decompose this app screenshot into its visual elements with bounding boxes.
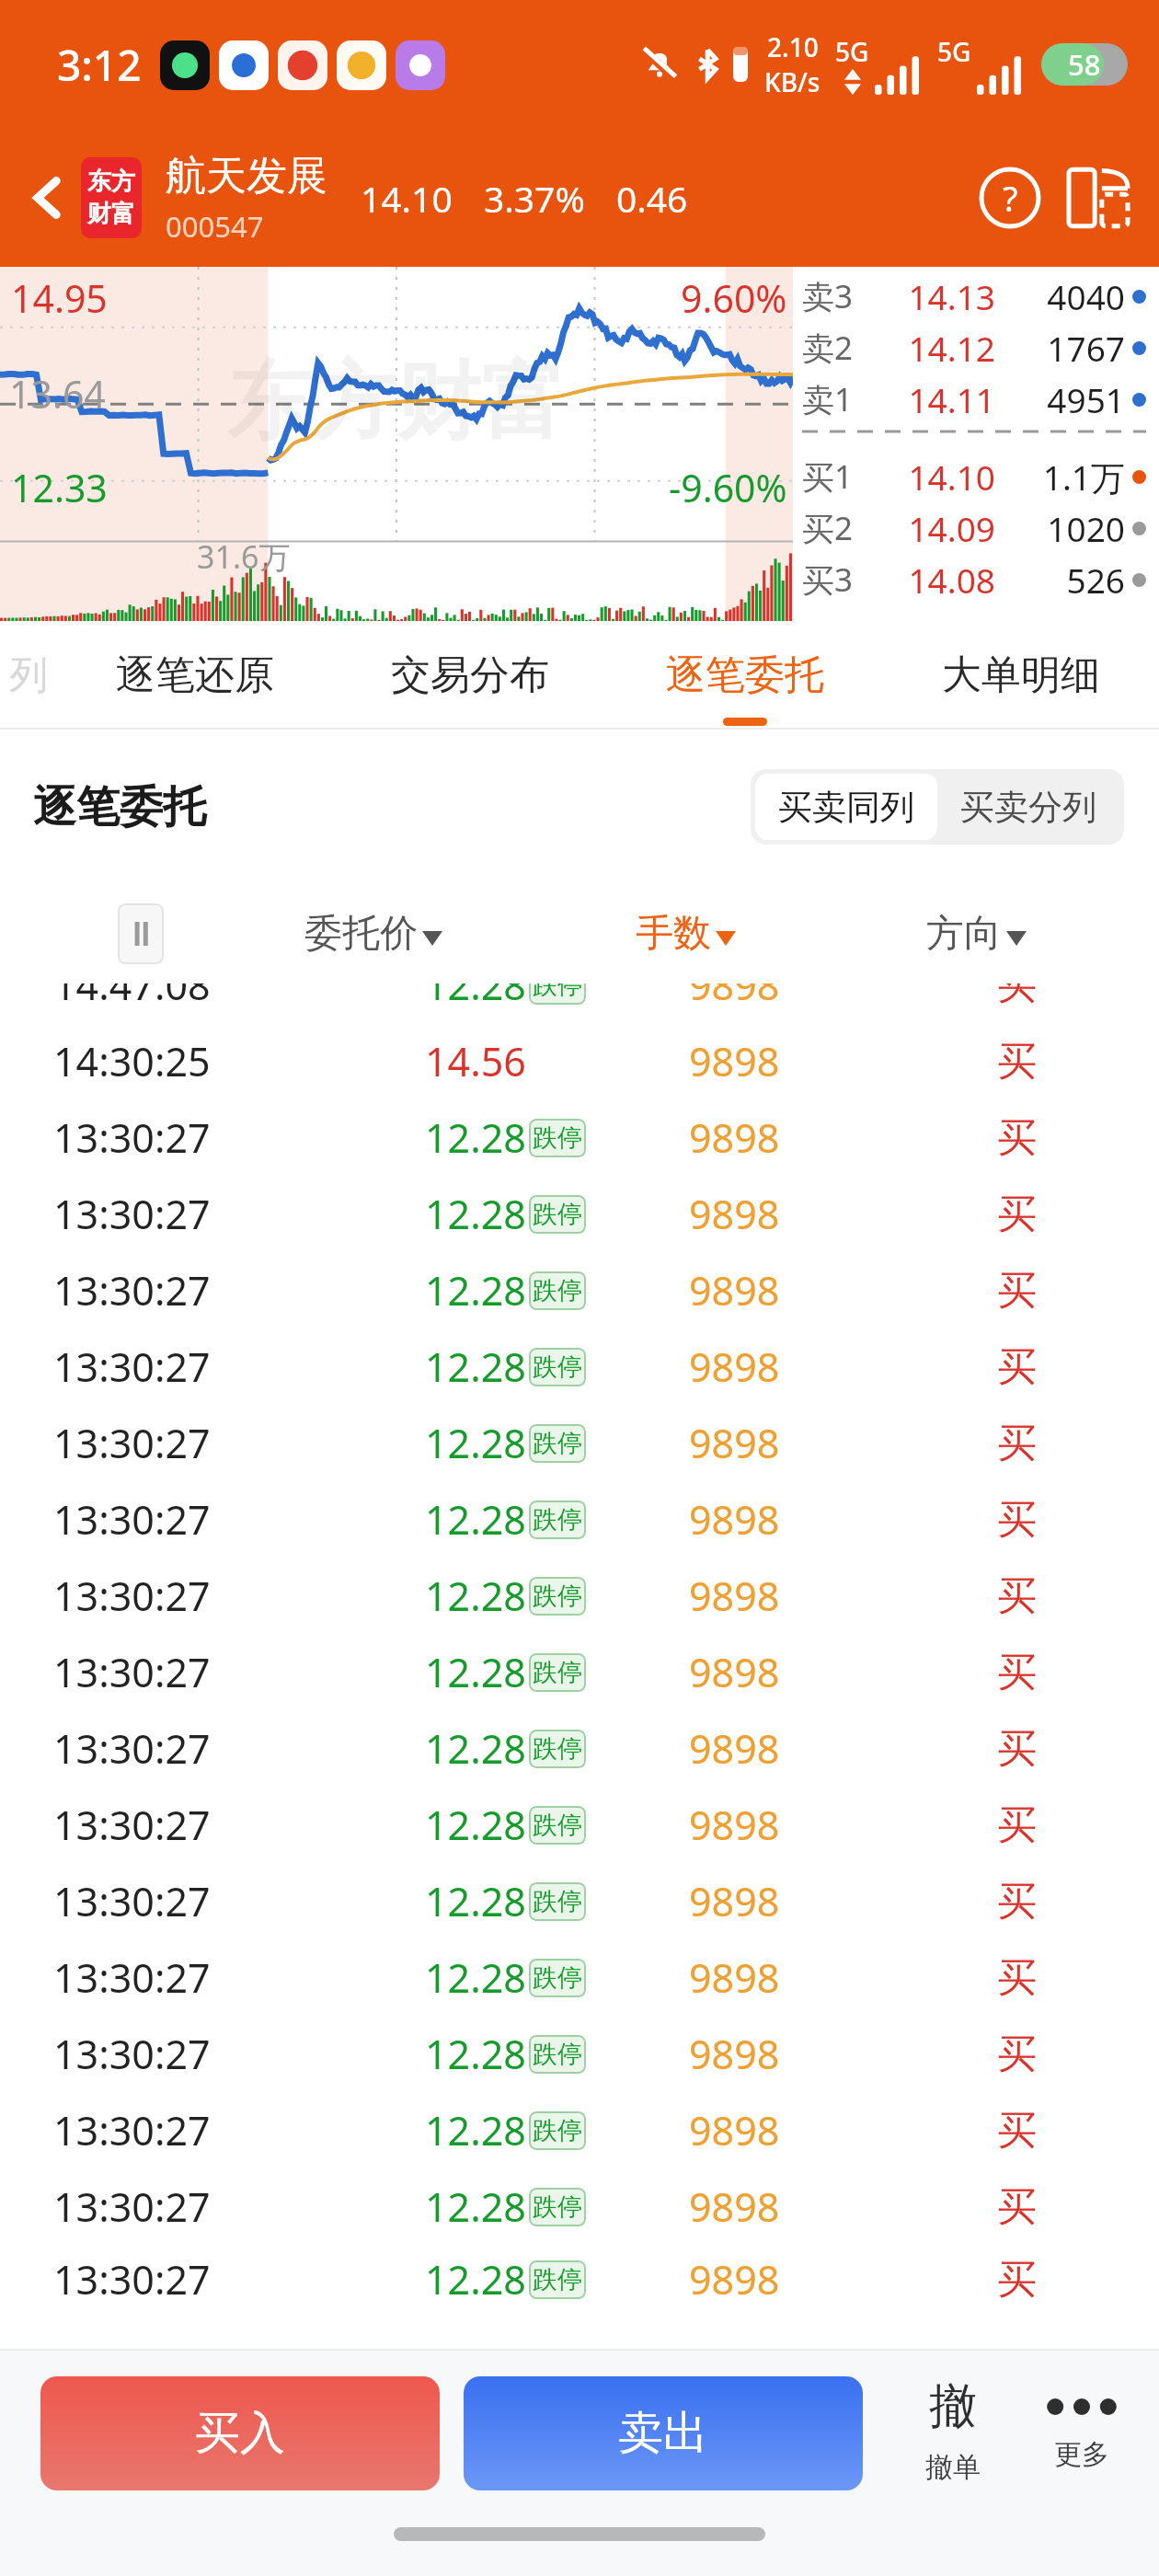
staticText: 9898 (689, 1645, 780, 1699)
button[interactable]: 13:30:27 (0, 2016, 1159, 2092)
staticText: 财富 (87, 199, 135, 229)
staticText: 撤单 (925, 2450, 981, 2485)
staticText: 1.1万 (1042, 454, 1125, 500)
button[interactable]: 撤 (901, 2376, 1004, 2485)
button[interactable]: 买1 (802, 451, 1146, 502)
staticText: 大单明细 (942, 650, 1100, 700)
button[interactable]: 13:30:27 (0, 1099, 1159, 1176)
button[interactable]: 13:30:27 (0, 1481, 1159, 1558)
staticText: 526 (1066, 557, 1125, 603)
staticText: 12.28 (425, 2179, 526, 2234)
button[interactable]: 买卖同列 (755, 774, 937, 840)
staticText: 委托价 (304, 910, 418, 958)
staticText: 12.28 (425, 1645, 526, 1699)
staticText: 买 (997, 1113, 1037, 1163)
staticText: 14.95 (11, 272, 108, 324)
button[interactable]: 逐笔还原 (57, 621, 332, 730)
staticText: 58 (1068, 45, 1101, 84)
staticText: 9898 (689, 1416, 780, 1470)
button[interactable]: Back (18, 168, 77, 227)
staticText: 卖3 (802, 274, 879, 318)
staticText: 14.12 (879, 325, 995, 371)
button[interactable]: 13:30:27 (0, 2168, 1159, 2245)
staticText: 5G (937, 34, 971, 69)
staticText: 12.28 (425, 1874, 526, 1928)
staticText: 卖2 (802, 326, 879, 370)
staticText: 12.28 (425, 1416, 526, 1470)
staticText: 13:30:27 (53, 1950, 211, 2005)
staticText: 13:30:27 (53, 1798, 211, 1852)
staticText: 跌停 (533, 1810, 582, 1841)
button[interactable]: 交易分布 (332, 621, 607, 730)
button[interactable]: Help (973, 161, 1047, 235)
button[interactable]: 14:30:25 (0, 1023, 1159, 1099)
button[interactable]: 14:47:08 (0, 983, 1159, 1023)
staticText: 买 (997, 1953, 1037, 2003)
staticText: 14.08 (879, 557, 995, 603)
button[interactable]: 买3 (802, 554, 1146, 605)
staticText: 12.28 (425, 983, 526, 1012)
button[interactable]: 手数 (0, 910, 736, 958)
staticText: 东方 (87, 167, 135, 197)
staticText: 东方财富 (227, 349, 566, 455)
staticText: 9898 (689, 1110, 780, 1165)
staticText: 13:30:27 (53, 1340, 211, 1394)
button[interactable]: 卖出 (464, 2376, 863, 2490)
button[interactable]: 13:30:27 (0, 1558, 1159, 1634)
staticText: 0.46 (616, 174, 688, 223)
button[interactable]: 13:30:27 (0, 2245, 1159, 2314)
staticText: 跌停 (533, 1962, 582, 1994)
button[interactable]: 13:30:27 (0, 2092, 1159, 2168)
staticText: 买 (997, 1648, 1037, 1697)
staticText: 买1 (802, 454, 879, 499)
staticText: 9898 (689, 1187, 780, 1241)
staticText: 买 (997, 2030, 1037, 2079)
button[interactable]: 委托价 (0, 910, 442, 958)
button[interactable]: 13:30:27 (0, 1176, 1159, 1252)
staticText: 4040 (1047, 273, 1125, 319)
button[interactable]: 买卖分列 (937, 774, 1119, 840)
staticText: 13:30:27 (53, 1263, 211, 1317)
button[interactable]: 买2 (802, 502, 1146, 554)
button[interactable]: 13:30:27 (0, 1634, 1159, 1710)
button[interactable]: Split screen (1061, 161, 1135, 235)
button[interactable]: 13:30:27 (0, 1710, 1159, 1787)
staticText: 9898 (689, 2252, 780, 2306)
staticText: ? (1003, 174, 1018, 222)
staticText: 9898 (689, 1721, 780, 1776)
staticText: 12.28 (425, 1569, 526, 1623)
button[interactable]: 13:30:27 (0, 1252, 1159, 1328)
button[interactable]: 东方 (81, 157, 142, 238)
staticText: 跌停 (533, 1733, 582, 1765)
button[interactable]: 买入 (40, 2376, 440, 2490)
staticText: 12.28 (425, 2103, 526, 2157)
staticText: 13:30:27 (53, 2027, 211, 2081)
button[interactable]: 卖1 (802, 374, 1146, 425)
button[interactable]: 13:30:27 (0, 1405, 1159, 1481)
button[interactable]: More (1030, 2376, 1133, 2472)
staticText: 跌停 (533, 2039, 582, 2070)
staticText: 逐笔还原 (116, 650, 274, 700)
staticText: 13:30:27 (53, 1416, 211, 1470)
staticText: 9898 (689, 983, 780, 1012)
button[interactable]: 13:30:27 (0, 1328, 1159, 1405)
button[interactable]: 大单明细 (883, 621, 1159, 730)
button[interactable]: 方向 (0, 910, 1027, 958)
button[interactable]: 13:30:27 (0, 1939, 1159, 2016)
button[interactable]: 13:30:27 (0, 1787, 1159, 1863)
staticText: 逐笔委托 (666, 650, 824, 700)
staticText: 买 (997, 983, 1037, 1010)
staticText: 跌停 (533, 1428, 582, 1459)
staticText: 卖出 (618, 2405, 708, 2462)
staticText: 13:30:27 (53, 1492, 211, 1547)
button[interactable]: Pause updates (118, 903, 164, 964)
staticText: 12.28 (425, 1187, 526, 1241)
staticText: 买 (997, 1190, 1037, 1239)
staticText: 1020 (1047, 505, 1125, 551)
button[interactable]: 卖2 (802, 322, 1146, 374)
staticText: 手数 (636, 910, 711, 958)
button[interactable]: 13:30:27 (0, 1863, 1159, 1939)
button[interactable]: 列 (0, 621, 57, 730)
button[interactable]: 卖3 (802, 270, 1146, 322)
button[interactable]: 逐笔委托 (607, 621, 883, 730)
